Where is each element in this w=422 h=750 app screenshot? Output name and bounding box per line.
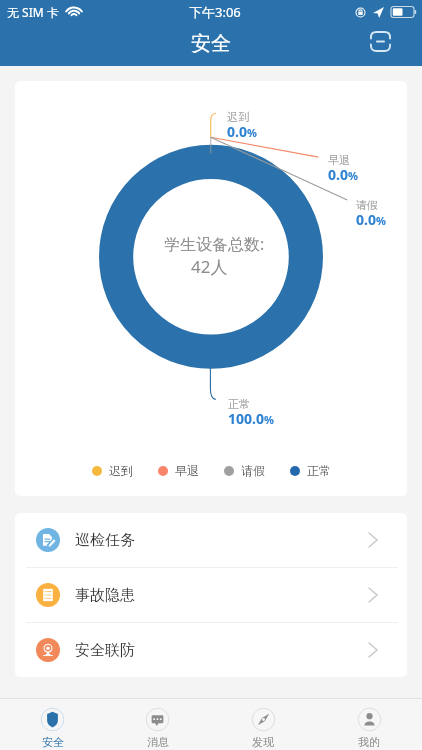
staticText: 安全 [191,31,231,56]
staticText: 0.0% [328,165,358,184]
staticText: 早退 [328,153,350,167]
staticText: 安全 [42,735,64,749]
button[interactable]: 发现 [210,700,316,749]
staticText: 0.0% [227,122,257,141]
staticText: 我的 [358,735,380,749]
staticText: 请假 [241,463,265,478]
button[interactable]: 事故隐患 [15,568,407,622]
staticText: 无 SIM 卡 [7,4,59,20]
staticText: 42人 [191,255,228,278]
staticText: 发现 [252,735,274,749]
button[interactable]: 安全 [0,700,105,749]
staticText: 0.0% [356,210,386,229]
staticText: 正常 [307,463,331,478]
staticText: 正常 [228,397,250,411]
staticText: 学生设备总数: [164,233,265,255]
staticText: 早退 [175,463,199,478]
staticText: 安全联防 [75,641,135,660]
staticText: 迟到 [227,110,249,124]
staticText: 请假 [356,198,378,212]
staticText: 下午3:06 [189,3,241,21]
button[interactable]: 消息 [105,700,210,749]
staticText: 消息 [147,735,169,749]
staticText: 事故隐患 [75,586,135,605]
button[interactable]: 我的 [316,700,422,749]
staticText: 巡检任务 [75,531,135,550]
button[interactable]: 巡检任务 [15,513,407,567]
button[interactable]: 安全联防 [15,623,407,677]
staticText: 100.0% [228,409,274,428]
staticText: 迟到 [109,463,133,478]
button[interactable]: Scan [363,24,397,58]
